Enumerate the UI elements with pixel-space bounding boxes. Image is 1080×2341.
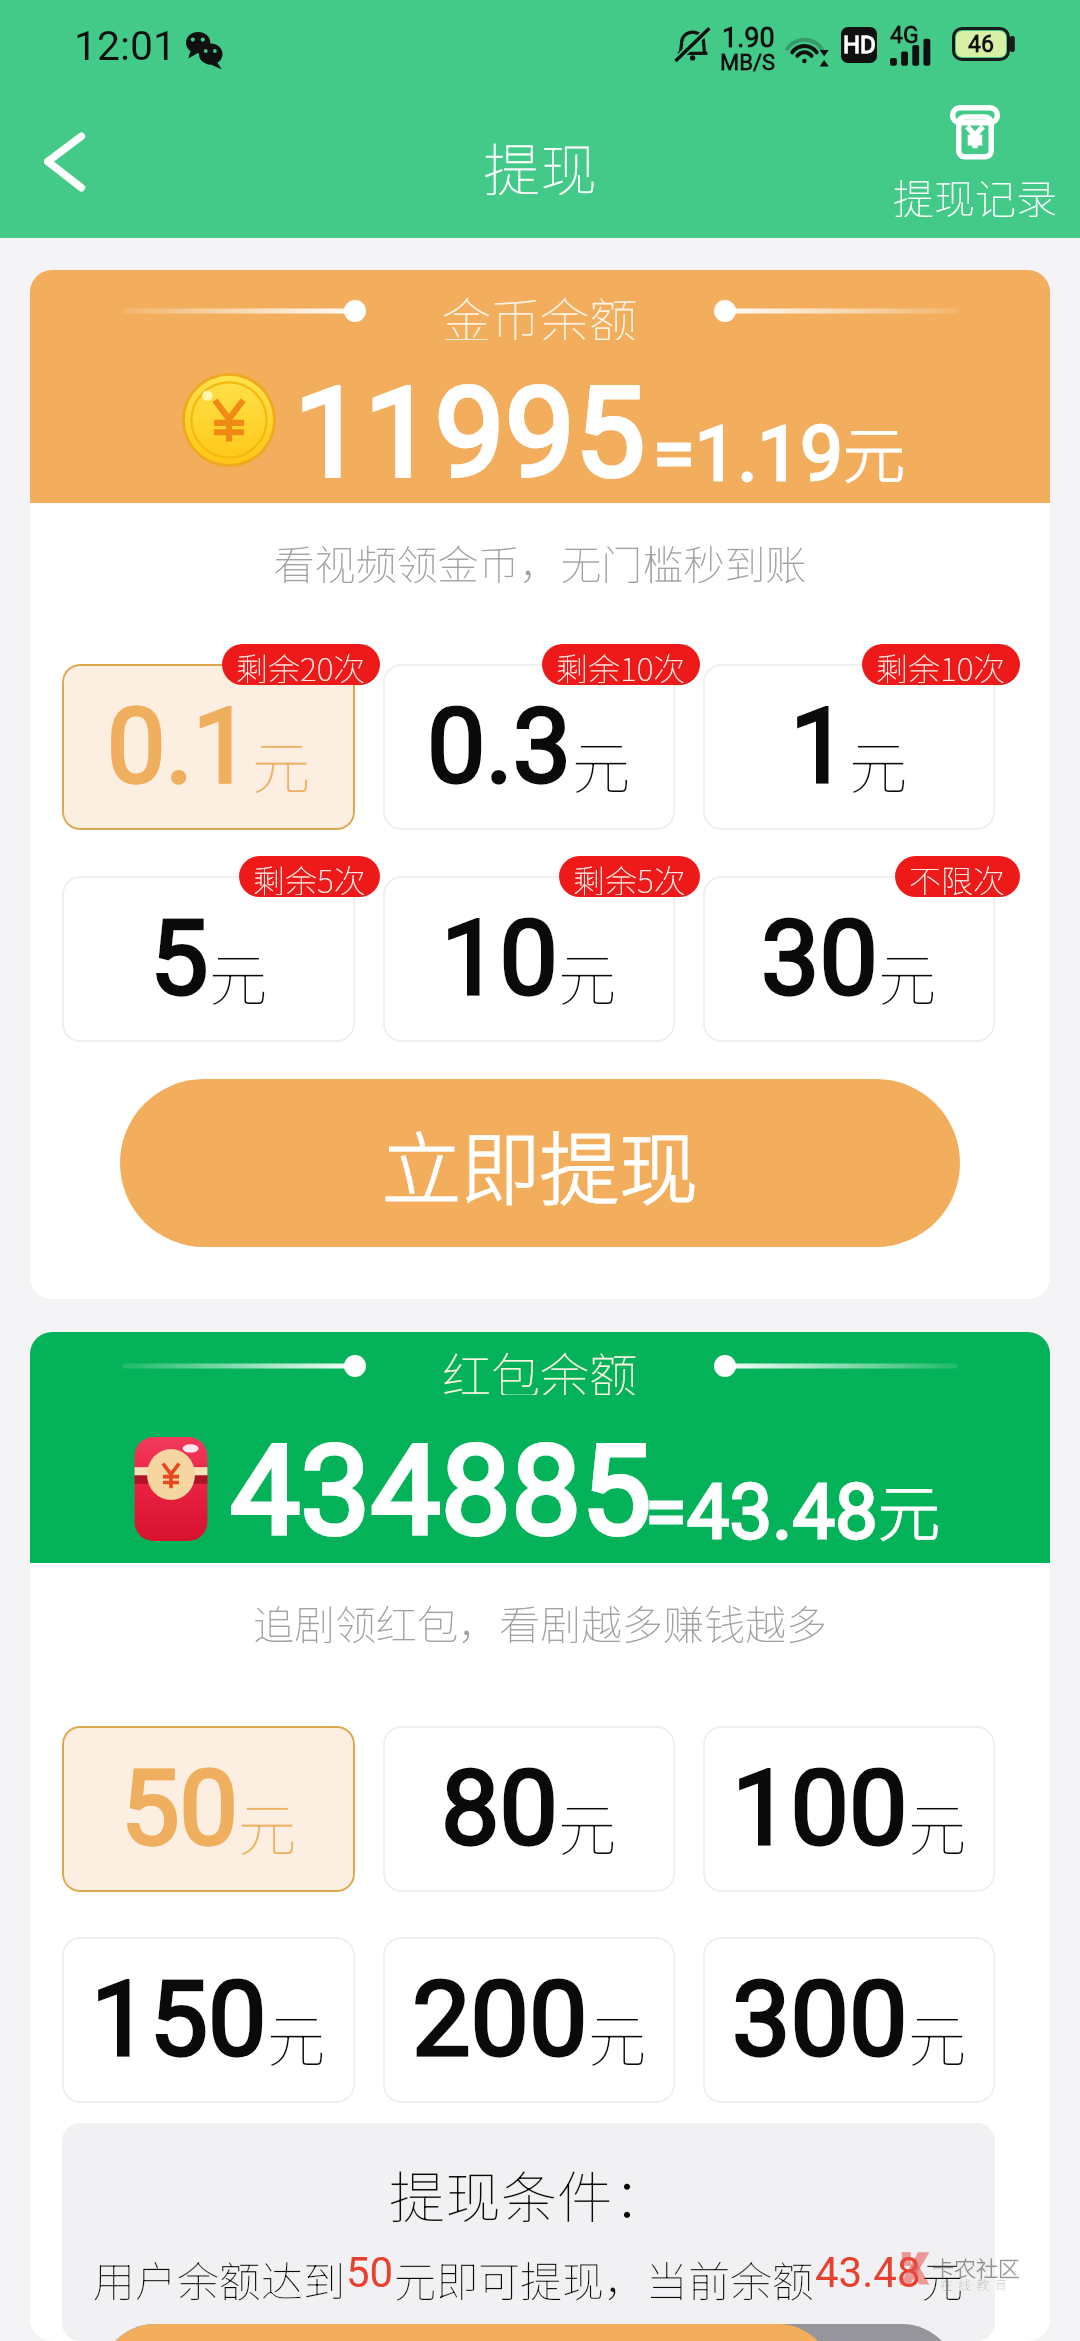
staticText: 元	[572, 722, 631, 806]
staticText: 元	[908, 1784, 967, 1868]
staticText: 150	[91, 1959, 267, 2081]
button[interactable]: 150	[62, 1937, 355, 2103]
staticText: 元	[238, 1784, 297, 1868]
staticText: 元	[878, 1464, 941, 1554]
staticText: 元	[921, 2248, 964, 2309]
staticText: 元	[588, 1995, 647, 2079]
staticText: 提现	[483, 125, 597, 208]
staticText: 元	[558, 934, 617, 1018]
staticText: 12:01	[74, 22, 177, 70]
button[interactable]: 5	[62, 876, 355, 1042]
staticText: 剩余5次	[573, 856, 686, 897]
button[interactable]: 剩余10次	[876, 644, 1006, 685]
staticText: MB/S	[720, 50, 776, 76]
staticText: 300	[732, 1959, 908, 2081]
staticText: 看视频领金币，无门槛秒到账	[30, 532, 1050, 591]
button[interactable]: 50	[62, 1726, 355, 1892]
staticText: 0.3	[427, 686, 572, 808]
staticText: 剩余20次	[236, 644, 366, 685]
button[interactable]: 不限次	[909, 856, 1006, 897]
button[interactable]: 立即提现	[120, 1079, 960, 1247]
staticText: 5	[150, 898, 209, 1020]
staticText: 10	[441, 898, 558, 1020]
staticText: 追剧领红包，看剧越多赚钱越多	[30, 1592, 1050, 1651]
staticText: 元	[843, 406, 906, 496]
staticText: 100	[732, 1748, 908, 1870]
staticText: 11995	[294, 360, 646, 506]
staticText: 元	[878, 934, 937, 1018]
staticText: 卡农社区	[932, 2251, 1021, 2283]
staticText: 1.90	[722, 22, 775, 54]
staticText: 金币余额	[442, 282, 639, 340]
staticText: 43.48	[815, 2248, 921, 2297]
button[interactable]: 剩余5次	[253, 856, 366, 897]
button[interactable]: 剩余5次	[573, 856, 686, 897]
button[interactable]: 1	[703, 664, 995, 830]
staticText: 在线教育	[940, 2275, 1013, 2294]
staticText: 80	[441, 1748, 558, 1870]
staticText: 434885	[230, 1418, 652, 1564]
staticText: 用户余额达到	[93, 2248, 346, 2309]
staticText: HD	[843, 31, 876, 59]
staticText: 0.1	[107, 686, 252, 808]
staticText: 元	[908, 1995, 967, 2079]
button[interactable]: 100	[703, 1726, 995, 1892]
staticText: 1	[790, 686, 849, 808]
staticText: 元	[267, 1995, 326, 2079]
staticText: 200	[412, 1959, 588, 2081]
staticText: 剩余10次	[876, 644, 1006, 685]
staticText: 元	[252, 722, 311, 806]
button[interactable]: 10	[383, 876, 675, 1042]
staticText: 30	[761, 898, 878, 1020]
staticText: 元	[558, 1784, 617, 1868]
button[interactable]: Back	[24, 114, 106, 196]
button[interactable]: 提现记录	[893, 104, 1057, 163]
staticText: 提现记录	[893, 166, 1057, 225]
staticText: 剩余10次	[556, 644, 686, 685]
staticText: 元	[209, 934, 268, 1018]
staticText: 立即提现	[382, 1106, 698, 1220]
staticText: 46	[968, 31, 994, 57]
staticText: 不限次	[909, 856, 1006, 897]
staticText: 提现条件：	[389, 2153, 669, 2234]
button[interactable]	[100, 2324, 957, 2341]
button[interactable]: 0.1	[62, 664, 355, 830]
button[interactable]: 80	[383, 1726, 675, 1892]
staticText: 元	[849, 722, 908, 806]
staticText: 4G	[890, 22, 919, 49]
button[interactable]: 30	[703, 876, 995, 1042]
staticText: =43.48	[645, 1467, 878, 1556]
staticText: 50	[346, 2248, 394, 2297]
button[interactable]: 0.3	[383, 664, 675, 830]
staticText: 红包余额	[442, 1337, 639, 1395]
staticText: 50	[121, 1748, 238, 1870]
button[interactable]: 300	[703, 1937, 995, 2103]
button[interactable]: 剩余10次	[556, 644, 686, 685]
staticText: 元即可提现，当前余额	[394, 2248, 815, 2309]
button[interactable]: 剩余20次	[236, 644, 366, 685]
staticText: =1.19	[653, 409, 843, 498]
staticText: 剩余5次	[253, 856, 366, 897]
button[interactable]: 200	[383, 1937, 675, 2103]
